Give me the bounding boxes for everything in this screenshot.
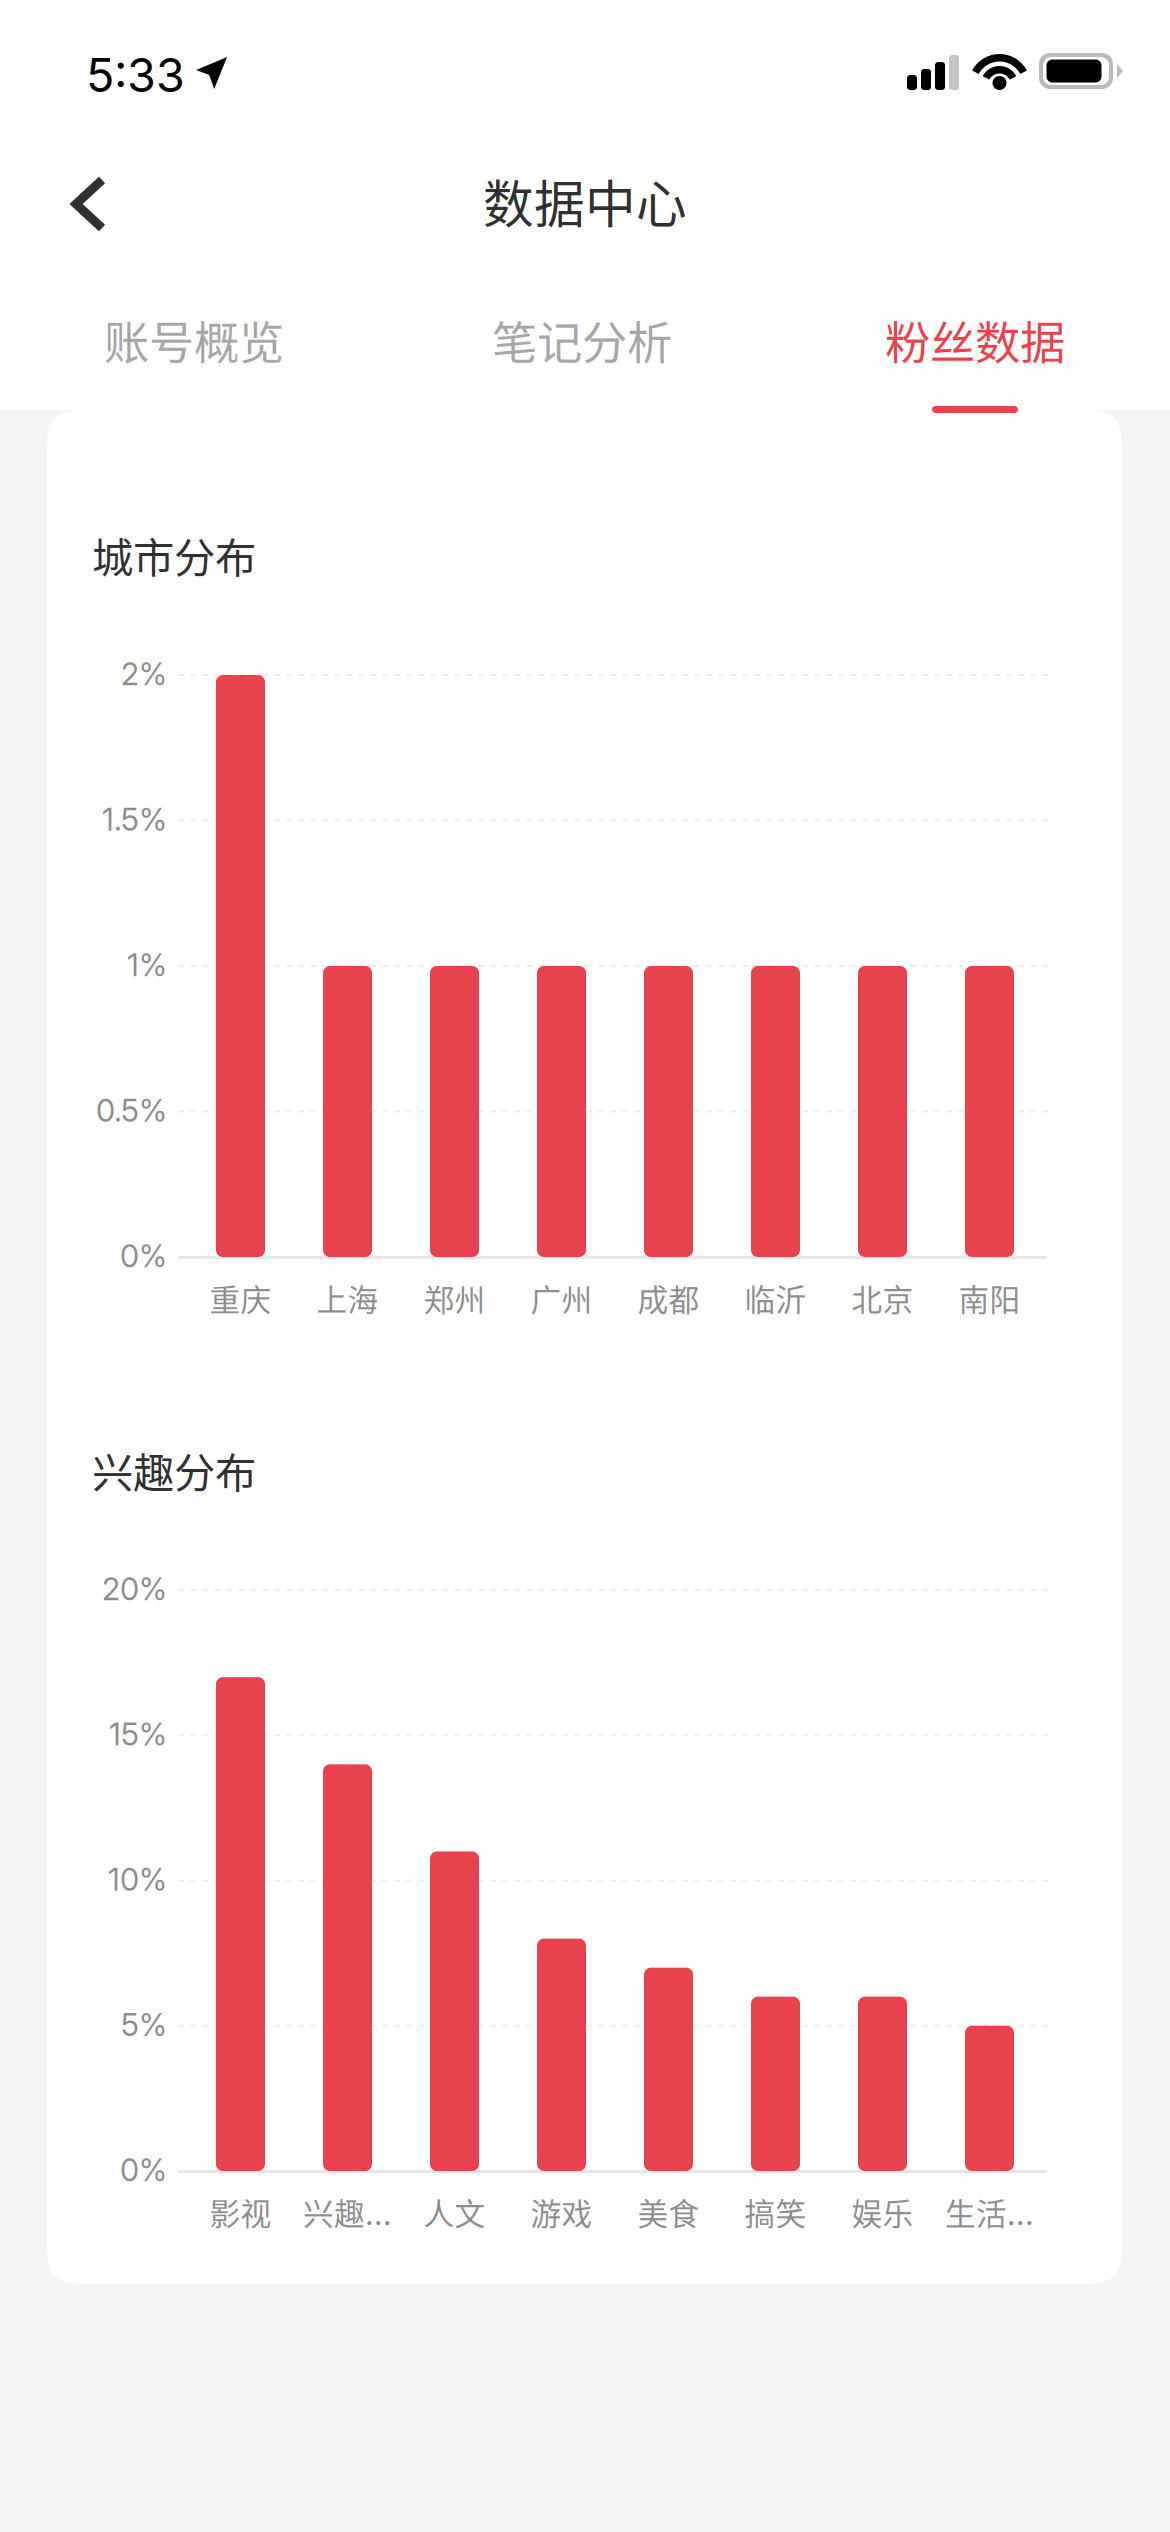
staticText: 15%: [109, 1716, 167, 1753]
staticText: 笔记分析: [492, 307, 672, 373]
button[interactable]: Back: [48, 153, 176, 255]
staticText: 0%: [120, 2151, 167, 2188]
staticText: 美食: [637, 2190, 699, 2234]
staticText: 1%: [127, 946, 167, 983]
staticText: 0.5%: [96, 1092, 167, 1129]
staticText: 广州: [530, 1276, 592, 1320]
button[interactable]: 账号概览: [44, 312, 344, 442]
staticText: 5%: [121, 2006, 167, 2043]
staticText: 1.5%: [102, 801, 167, 838]
staticText: 10%: [108, 1861, 167, 1898]
staticText: 兴趣...: [303, 2190, 392, 2234]
staticText: 生活...: [945, 2190, 1034, 2234]
staticText: 临沂: [744, 1276, 806, 1320]
staticText: 重庆: [209, 1276, 271, 1320]
staticText: 粉丝数据: [885, 307, 1065, 373]
staticText: 人文: [423, 2190, 485, 2234]
button[interactable]: 粉丝数据: [825, 312, 1125, 442]
staticText: 娱乐: [851, 2190, 913, 2234]
staticText: 20%: [102, 1570, 167, 1607]
staticText: 数据中心: [483, 164, 687, 238]
staticText: 成都: [637, 1276, 699, 1320]
staticText: 游戏: [530, 2190, 592, 2234]
staticText: 搞笑: [744, 2190, 806, 2234]
staticText: 城市分布: [92, 525, 256, 585]
staticText: 5:33: [86, 47, 185, 103]
staticText: 账号概览: [104, 307, 284, 373]
staticText: 兴趣分布: [92, 1440, 256, 1500]
staticText: 南阳: [958, 1276, 1020, 1320]
staticText: 北京: [851, 1276, 913, 1320]
staticText: 影视: [209, 2190, 271, 2234]
button[interactable]: 笔记分析: [432, 312, 732, 442]
staticText: 上海: [316, 1276, 378, 1320]
staticText: 2%: [121, 655, 167, 692]
staticText: 0%: [120, 1237, 167, 1274]
staticText: 郑州: [423, 1276, 485, 1320]
